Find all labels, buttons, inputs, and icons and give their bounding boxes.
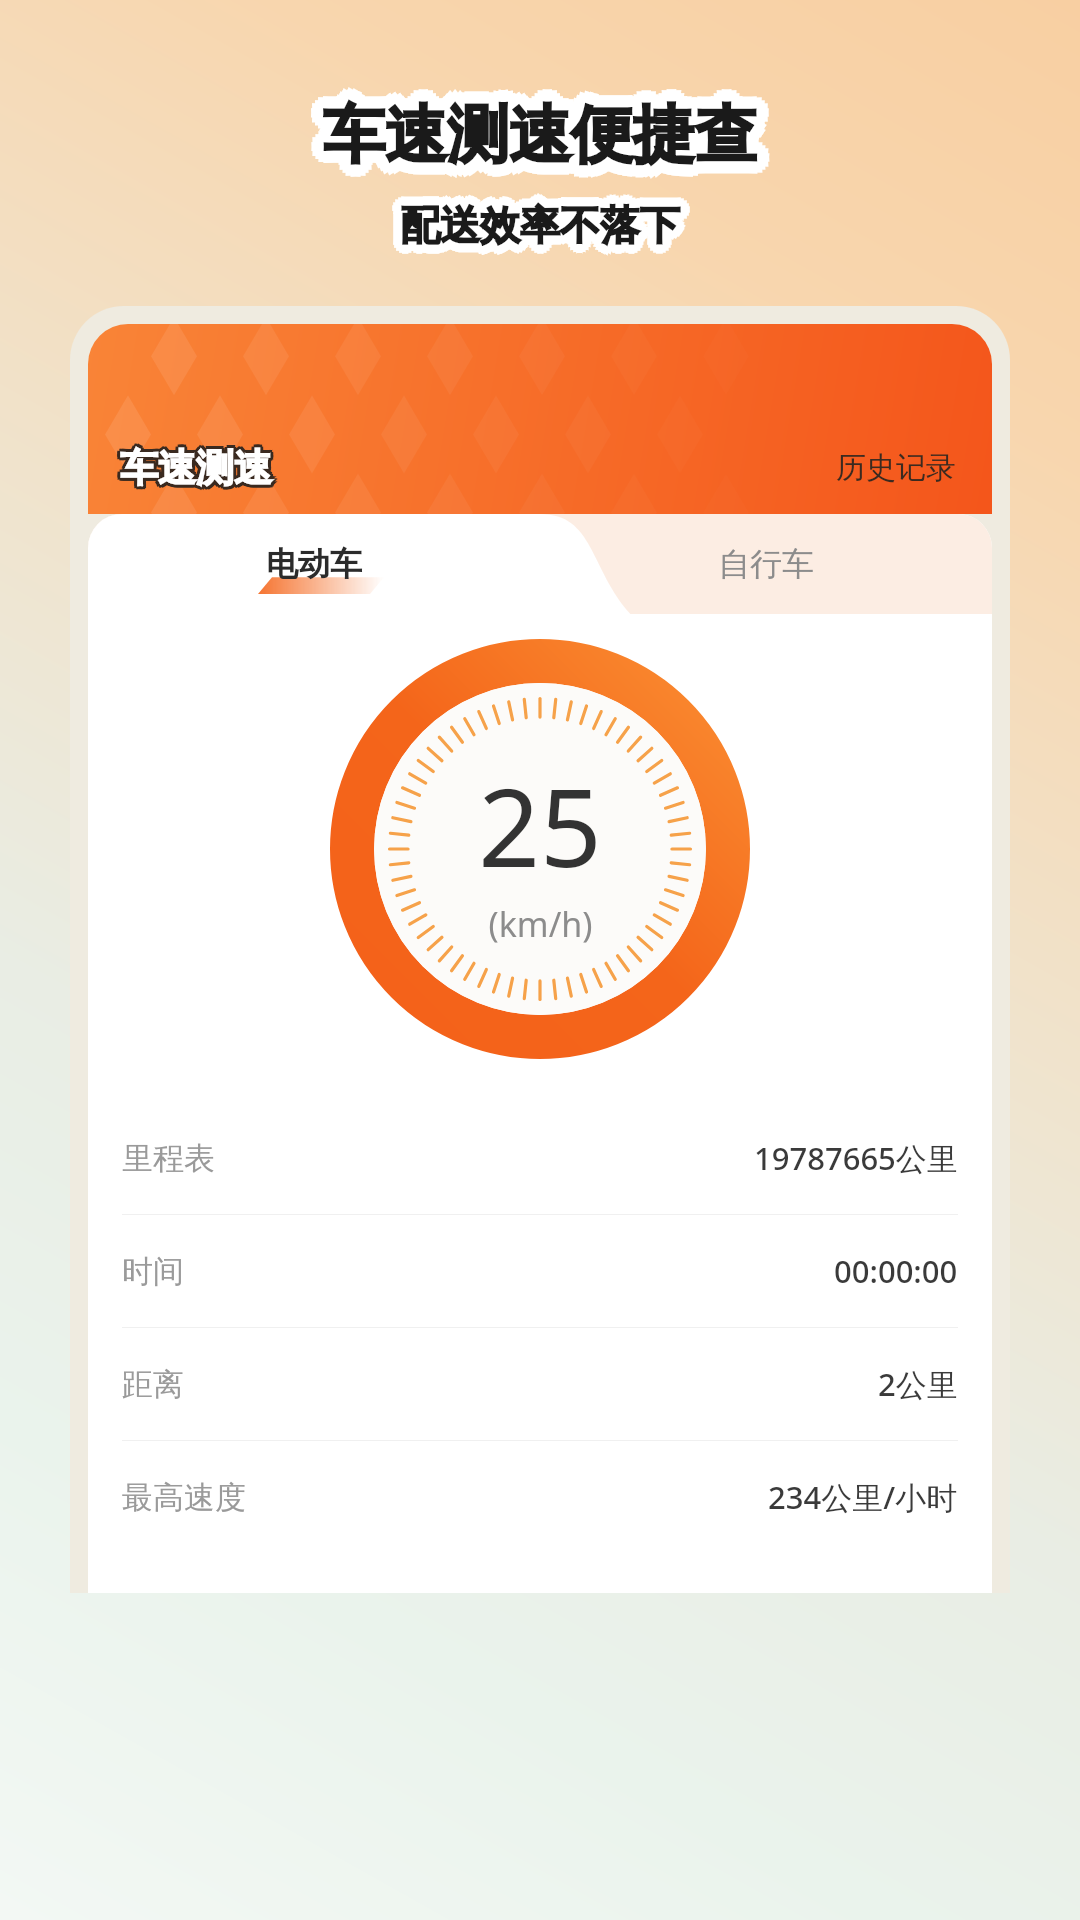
staticText: 车速测速 xyxy=(123,443,275,491)
staticText: 配送效率不落下 xyxy=(408,203,688,253)
staticText: 车速测速便捷查 xyxy=(315,104,749,182)
staticText: 车速测速便捷查 xyxy=(312,101,746,179)
staticText: 配送效率不落下 xyxy=(392,203,672,253)
staticText: 车速测速 xyxy=(117,446,269,494)
staticText: 配送效率不落下 xyxy=(391,200,671,250)
button[interactable]: 历史记录 xyxy=(832,445,960,491)
staticText: 配送效率不落下 xyxy=(397,208,677,258)
staticText: 配送效率不落下 xyxy=(394,194,674,244)
staticText: 车速测速便捷查 xyxy=(334,101,768,179)
button[interactable]: 车速测速 xyxy=(120,444,272,492)
staticText: 00:00:00 xyxy=(834,1250,958,1292)
staticText: 里程表 xyxy=(122,1139,215,1178)
staticText: 配送效率不落下 xyxy=(400,200,680,250)
staticText: 车速测速便捷查 xyxy=(331,88,765,166)
staticText: 配送效率不落下 xyxy=(408,197,688,247)
staticText: 配送效率不落下 xyxy=(403,208,683,258)
staticText: 配送效率不落下 xyxy=(394,206,674,256)
staticText: 配送效率不落下 xyxy=(392,197,672,247)
staticText: 配送效率不落下 xyxy=(403,192,683,242)
staticText: 车速测速便捷查 xyxy=(335,96,769,174)
staticText: 车速测速便捷查 xyxy=(323,108,757,186)
staticText: 车速测速 xyxy=(122,441,274,489)
staticText: 25 xyxy=(478,752,602,899)
staticText: 车速测速 xyxy=(120,447,272,495)
staticText: 配送效率不落下 xyxy=(397,192,677,242)
staticText: 车速测速 xyxy=(117,443,269,491)
staticText: 车速测速 xyxy=(120,441,272,489)
staticText: 车速测速 xyxy=(123,444,275,492)
staticText: 配送效率不落下 xyxy=(406,194,686,244)
staticText: 距离 xyxy=(122,1365,184,1404)
staticText: 电动车 xyxy=(266,544,362,584)
button[interactable]: 最高速度 xyxy=(88,1441,992,1553)
staticText: 最高速度 xyxy=(122,1478,246,1517)
staticText: 车速测速便捷查 xyxy=(328,107,762,185)
button[interactable]: 距离 xyxy=(88,1328,992,1441)
staticText: 车速测速便捷查 xyxy=(334,91,768,169)
button[interactable]: 里程表 xyxy=(88,1102,992,1215)
staticText: 车速测速 xyxy=(123,446,275,494)
staticText: 历史记录 xyxy=(836,449,956,487)
staticText: 时间 xyxy=(122,1252,184,1291)
staticText: 配送效率不落下 xyxy=(406,206,686,256)
button[interactable]: 电动车 xyxy=(88,514,540,614)
staticText: 车速测速 xyxy=(119,447,271,495)
staticText: 车速测速便捷查 xyxy=(328,85,762,163)
staticText: 车速测速便捷查 xyxy=(318,107,752,185)
staticText: 2公里 xyxy=(878,1363,958,1405)
staticText: 19787665公里 xyxy=(754,1137,958,1179)
staticText: 车速测速便捷查 xyxy=(318,85,752,163)
staticText: 车速测速便捷查 xyxy=(315,88,749,166)
staticText: 配送效率不落下 xyxy=(400,191,680,241)
staticText: 车速测速便捷查 xyxy=(311,96,745,174)
staticText: 车速测速 xyxy=(119,441,271,489)
button[interactable]: 自行车 xyxy=(540,514,992,614)
staticText: 车速测速便捷查 xyxy=(323,96,757,174)
staticText: 车速测速 xyxy=(117,444,269,492)
staticText: 车速测速便捷查 xyxy=(323,84,757,162)
staticText: 车速测速 xyxy=(120,444,272,492)
staticText: 车速测速便捷查 xyxy=(312,91,746,169)
staticText: 配送效率不落下 xyxy=(409,200,689,250)
staticText: (km/h) xyxy=(488,901,593,947)
staticText: 自行车 xyxy=(718,544,814,584)
staticText: 234公里/小时 xyxy=(768,1476,958,1518)
button[interactable]: 时间 xyxy=(88,1215,992,1328)
staticText: 车速测速便捷查 xyxy=(331,104,765,182)
staticText: 车速测速 xyxy=(122,447,274,495)
staticText: 配送效率不落下 xyxy=(400,209,680,259)
